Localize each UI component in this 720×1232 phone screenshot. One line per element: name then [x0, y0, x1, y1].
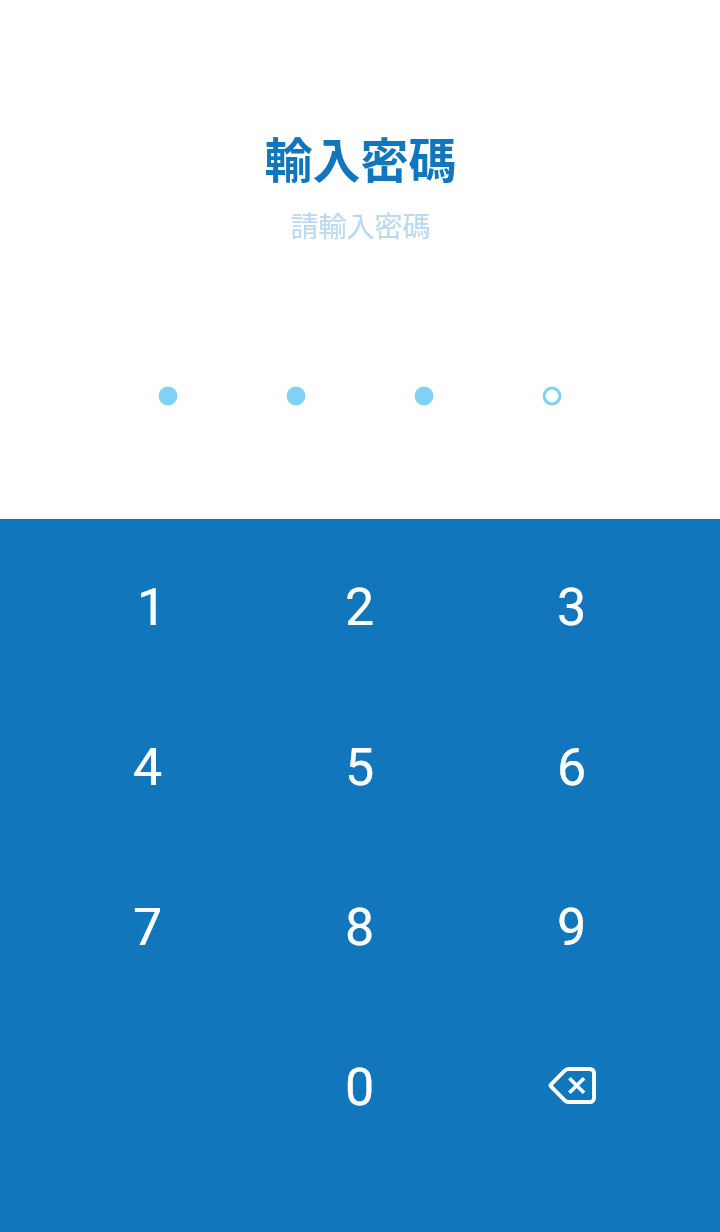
- staticText: 請輸入密碼: [290, 205, 431, 246]
- staticText: 6: [557, 737, 587, 798]
- other: Delete: [548, 1067, 596, 1104]
- staticText: 1: [137, 577, 167, 638]
- button[interactable]: Delete: [466, 1005, 678, 1165]
- staticText: 3: [557, 577, 587, 638]
- staticText: 5: [345, 737, 375, 798]
- staticText: 0: [345, 1057, 375, 1118]
- staticText: 7: [133, 897, 163, 958]
- button[interactable]: 1: [42, 525, 254, 685]
- button[interactable]: 3: [466, 525, 678, 685]
- button[interactable]: 6: [466, 685, 678, 845]
- staticText: 輸入密碼: [264, 122, 457, 192]
- staticText: 9: [557, 897, 587, 958]
- button[interactable]: 9: [466, 845, 678, 1005]
- button[interactable]: 4: [42, 685, 254, 845]
- staticText: 2: [345, 577, 375, 638]
- button[interactable]: 8: [254, 845, 466, 1005]
- button[interactable]: 5: [254, 685, 466, 845]
- button[interactable]: 0: [254, 1005, 466, 1165]
- button[interactable]: 7: [42, 845, 254, 1005]
- staticText: 8: [345, 897, 375, 958]
- button[interactable]: 2: [254, 525, 466, 685]
- staticText: 4: [133, 737, 163, 798]
